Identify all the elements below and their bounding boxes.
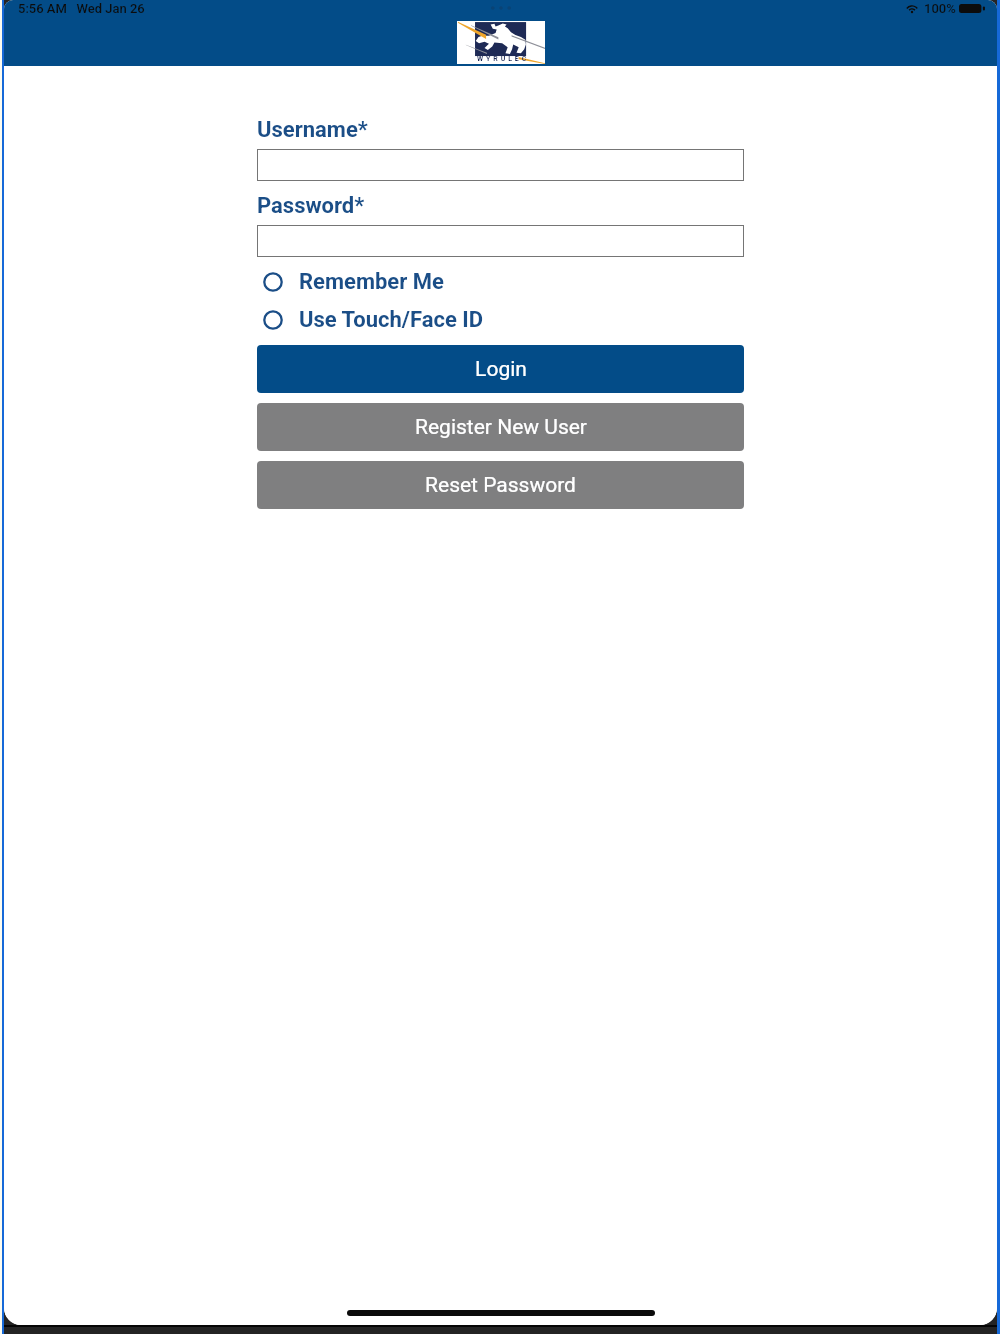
staticText: 100%: [924, 1, 956, 16]
staticText: Login: [475, 357, 527, 382]
staticText: 5:56 AM Wed Jan 26: [18, 1, 145, 16]
button[interactable]: Text field: [257, 149, 744, 181]
button[interactable]: Login: [257, 345, 744, 393]
button[interactable]: Text field: [257, 225, 744, 257]
staticText: Username*: [257, 117, 368, 143]
staticText: Register New User: [415, 415, 587, 440]
staticText: Use Touch/Face ID: [299, 307, 484, 333]
button[interactable]: Reset Password: [257, 461, 744, 509]
button[interactable]: Remember Me: [257, 265, 744, 299]
other: Wi-Fi: [905, 3, 919, 13]
other: Battery full: [959, 4, 985, 13]
button[interactable]: Use Touch/Face ID: [257, 303, 744, 337]
staticText: WYRULEC: [477, 55, 530, 63]
button[interactable]: Register New User: [257, 403, 744, 451]
other: Wyrulec logo: [457, 21, 545, 64]
staticText: Password*: [257, 193, 365, 219]
staticText: Remember Me: [299, 269, 444, 295]
staticText: Reset Password: [425, 473, 576, 498]
